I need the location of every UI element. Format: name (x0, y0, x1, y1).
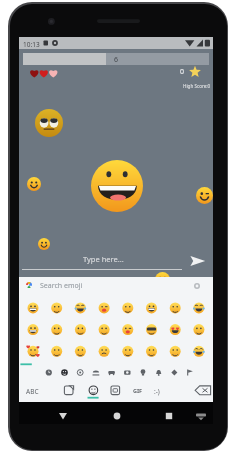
staticText: 10:13 (23, 40, 40, 49)
button[interactable]: Search emoji (19, 277, 213, 296)
other: Emoji options (194, 283, 200, 289)
staticText: Search emoji (40, 281, 83, 291)
button[interactable]: Back (53, 406, 73, 426)
button[interactable]: Recents (159, 406, 179, 426)
button[interactable]: Send (188, 253, 207, 272)
button[interactable]: GIF (133, 387, 143, 394)
staticText: 6 (23, 55, 209, 65)
staticText: 0 (180, 67, 185, 77)
button[interactable]: Home (107, 406, 127, 426)
button[interactable]: Hide keyboard (191, 406, 211, 426)
staticText: High Score:0 (183, 83, 211, 89)
button[interactable]: :-) (154, 387, 160, 396)
button[interactable]: Type here... (83, 254, 124, 264)
button[interactable]: ABC (26, 387, 39, 396)
